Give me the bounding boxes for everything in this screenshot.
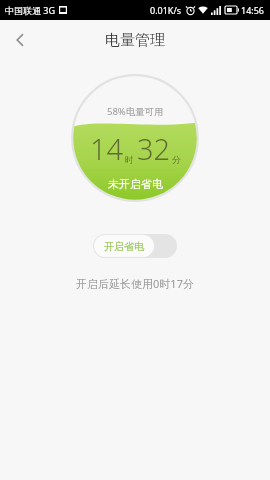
button[interactable]: Back xyxy=(0,20,40,60)
staticText: 0.01K/s xyxy=(150,4,182,16)
staticText: 开启省电 xyxy=(104,240,144,253)
staticText: 中国联通 3G xyxy=(5,4,56,16)
staticText: 14 xyxy=(90,129,124,168)
staticText: 58%电量可用 xyxy=(107,105,164,118)
button[interactable]: 开启省电 xyxy=(93,234,177,258)
staticText: 分 xyxy=(172,154,181,165)
staticText: 14:56 xyxy=(241,4,265,16)
staticText: 时 xyxy=(125,154,134,165)
staticText: 32 xyxy=(137,129,171,168)
staticText: 未开启省电 xyxy=(108,177,163,191)
staticText: 开启后延长使用0时17分 xyxy=(0,276,270,291)
staticText: 电量管理 xyxy=(105,31,165,50)
